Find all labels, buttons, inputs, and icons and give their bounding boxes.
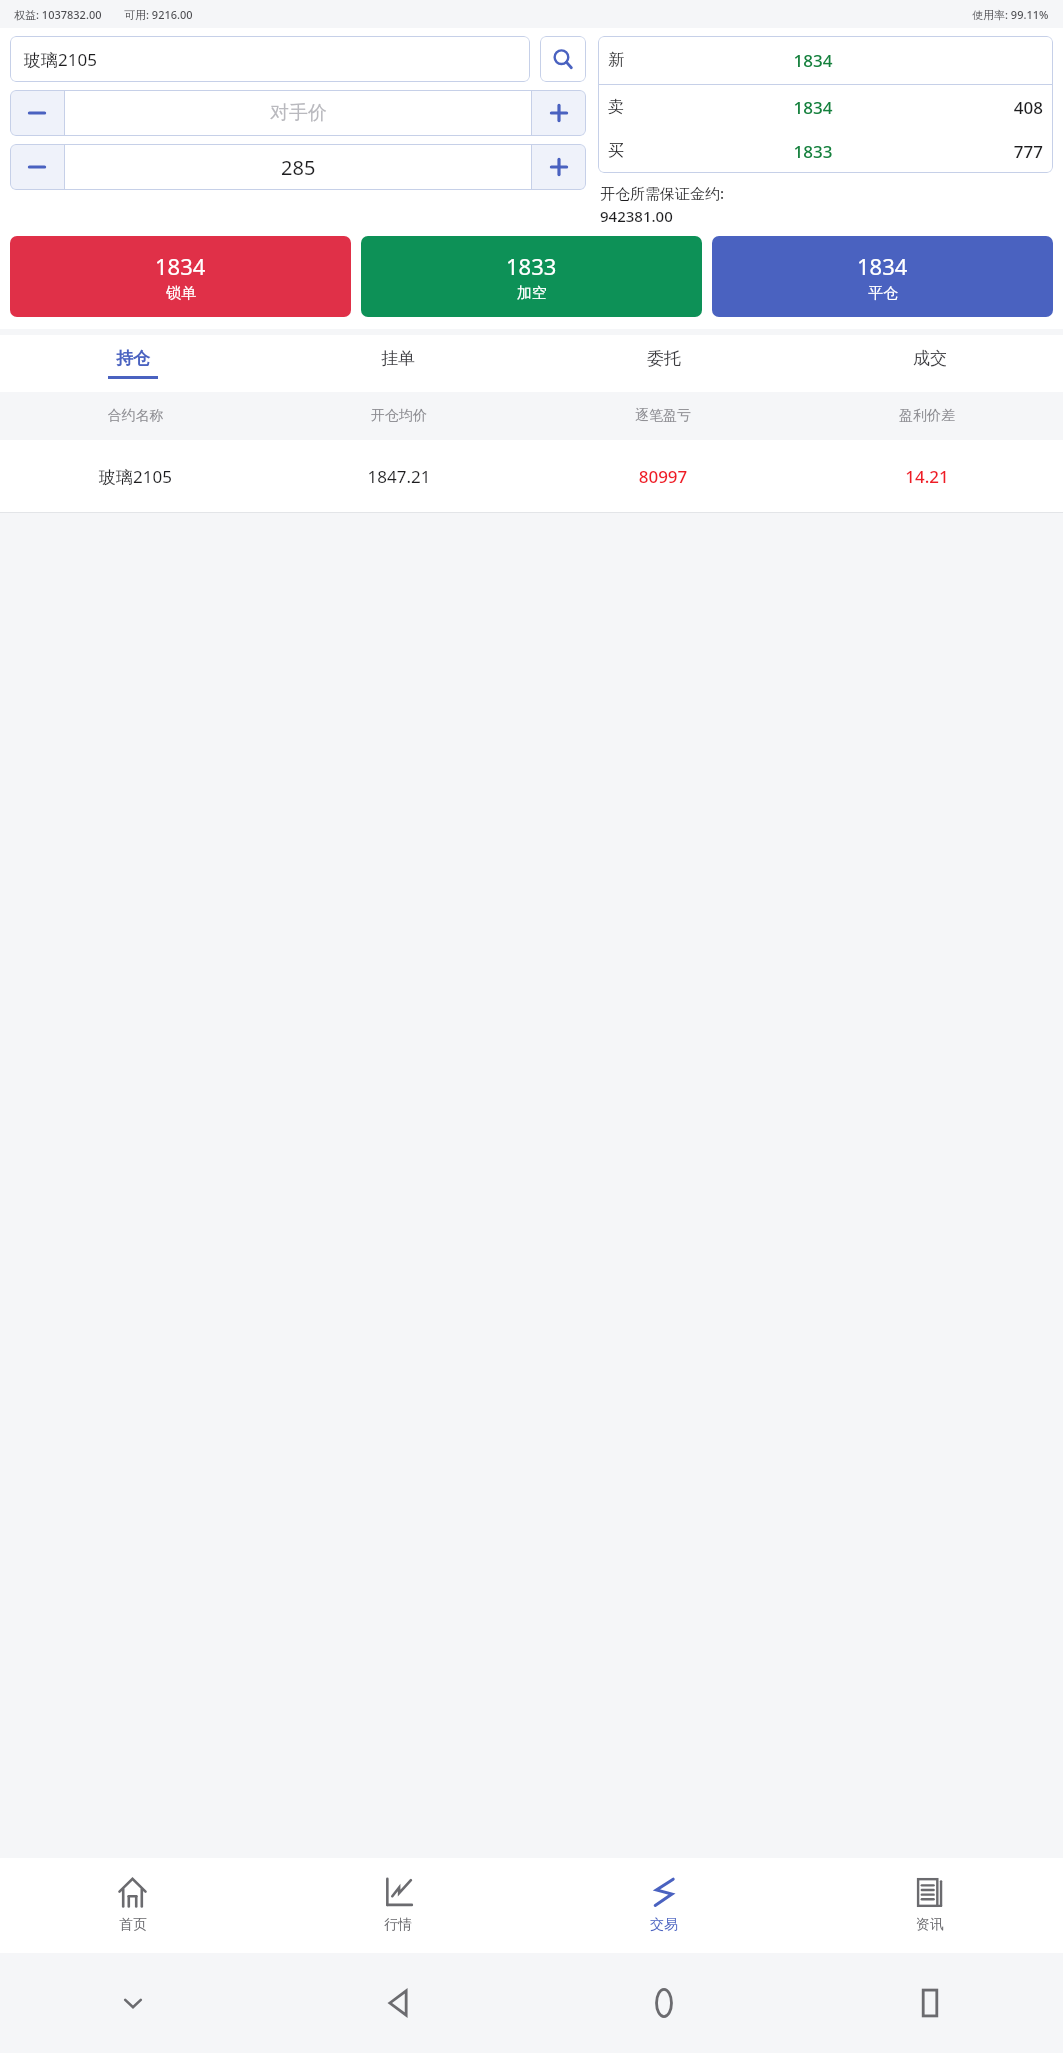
button[interactable]: 1833 bbox=[361, 236, 702, 317]
staticText: 1834 bbox=[857, 251, 908, 281]
button[interactable]: 减少 bbox=[10, 144, 64, 190]
staticText: 挂单 bbox=[381, 348, 415, 369]
button[interactable]: 对手价 bbox=[65, 90, 531, 136]
button[interactable]: 增加 bbox=[532, 90, 586, 136]
staticText: 1847.21 bbox=[267, 465, 531, 488]
staticText: 285 bbox=[281, 154, 316, 181]
button[interactable]: 玻璃2105 bbox=[10, 36, 530, 82]
button[interactable]: 委托 bbox=[531, 335, 797, 392]
staticText: 玻璃2105 bbox=[24, 48, 97, 71]
button[interactable]: 首页 bbox=[0, 1858, 265, 1953]
staticText: 加空 bbox=[517, 284, 547, 303]
staticText: 使用率: 99.11% bbox=[972, 7, 1049, 22]
button[interactable]: 资讯 bbox=[797, 1858, 1063, 1953]
button[interactable]: 减少 bbox=[10, 90, 64, 136]
staticText: 1834 bbox=[155, 251, 206, 281]
button[interactable]: 买 bbox=[598, 129, 1053, 173]
staticText: 942381.00 bbox=[600, 206, 673, 226]
staticText: 新 bbox=[608, 50, 720, 70]
staticText: 80997 bbox=[531, 465, 795, 488]
staticText: 交易 bbox=[650, 1916, 678, 1934]
staticText: 成交 bbox=[913, 348, 947, 369]
staticText: 锁单 bbox=[166, 284, 196, 303]
button[interactable]: 1834 bbox=[712, 236, 1053, 317]
staticText: 1834 bbox=[720, 49, 906, 72]
staticText: 开仓均价 bbox=[267, 407, 531, 425]
button[interactable]: 行情 bbox=[265, 1858, 531, 1953]
staticText: 408 bbox=[906, 96, 1043, 119]
staticText: 14.21 bbox=[795, 465, 1059, 488]
button[interactable]: 交易 bbox=[531, 1858, 797, 1953]
staticText: 资讯 bbox=[916, 1916, 944, 1934]
button[interactable]: 最近任务 bbox=[797, 1953, 1063, 2053]
staticText: 委托 bbox=[647, 348, 681, 369]
button[interactable]: 成交 bbox=[797, 335, 1063, 392]
button[interactable]: 收起键盘 bbox=[0, 1953, 265, 2053]
staticText: 逐笔盈亏 bbox=[531, 407, 795, 425]
staticText: 买 bbox=[608, 141, 720, 161]
staticText: 首页 bbox=[119, 1916, 147, 1934]
staticText: 持仓 bbox=[116, 348, 150, 369]
button[interactable]: 新 bbox=[598, 36, 1053, 84]
staticText: 平仓 bbox=[868, 284, 898, 303]
staticText: 1833 bbox=[720, 140, 906, 163]
staticText: 合约名称 bbox=[4, 407, 267, 425]
staticText: 行情 bbox=[384, 1916, 412, 1934]
button[interactable]: 卖 bbox=[598, 85, 1053, 129]
staticText: 权益: 1037832.00 bbox=[14, 7, 102, 22]
button[interactable]: 玻璃2105 bbox=[0, 440, 1063, 512]
staticText: 777 bbox=[906, 140, 1043, 163]
staticText: 玻璃2105 bbox=[4, 465, 267, 488]
staticText: 1833 bbox=[506, 251, 557, 281]
staticText: 卖 bbox=[608, 97, 720, 117]
staticText: 可用: 9216.00 bbox=[124, 7, 193, 22]
button[interactable]: 285 bbox=[65, 144, 531, 190]
staticText: 1834 bbox=[720, 96, 906, 119]
staticText: 对手价 bbox=[270, 101, 327, 125]
staticText: 开仓所需保证金约: bbox=[600, 183, 725, 203]
button[interactable]: 返回 bbox=[265, 1953, 531, 2053]
button[interactable]: 搜索 bbox=[540, 36, 586, 82]
button[interactable]: 挂单 bbox=[265, 335, 531, 392]
button[interactable]: 增加 bbox=[532, 144, 586, 190]
button[interactable]: 1834 bbox=[10, 236, 351, 317]
staticText: 盈利价差 bbox=[795, 407, 1059, 425]
button[interactable]: 持仓 bbox=[0, 335, 265, 392]
button[interactable]: 主页 bbox=[531, 1953, 797, 2053]
